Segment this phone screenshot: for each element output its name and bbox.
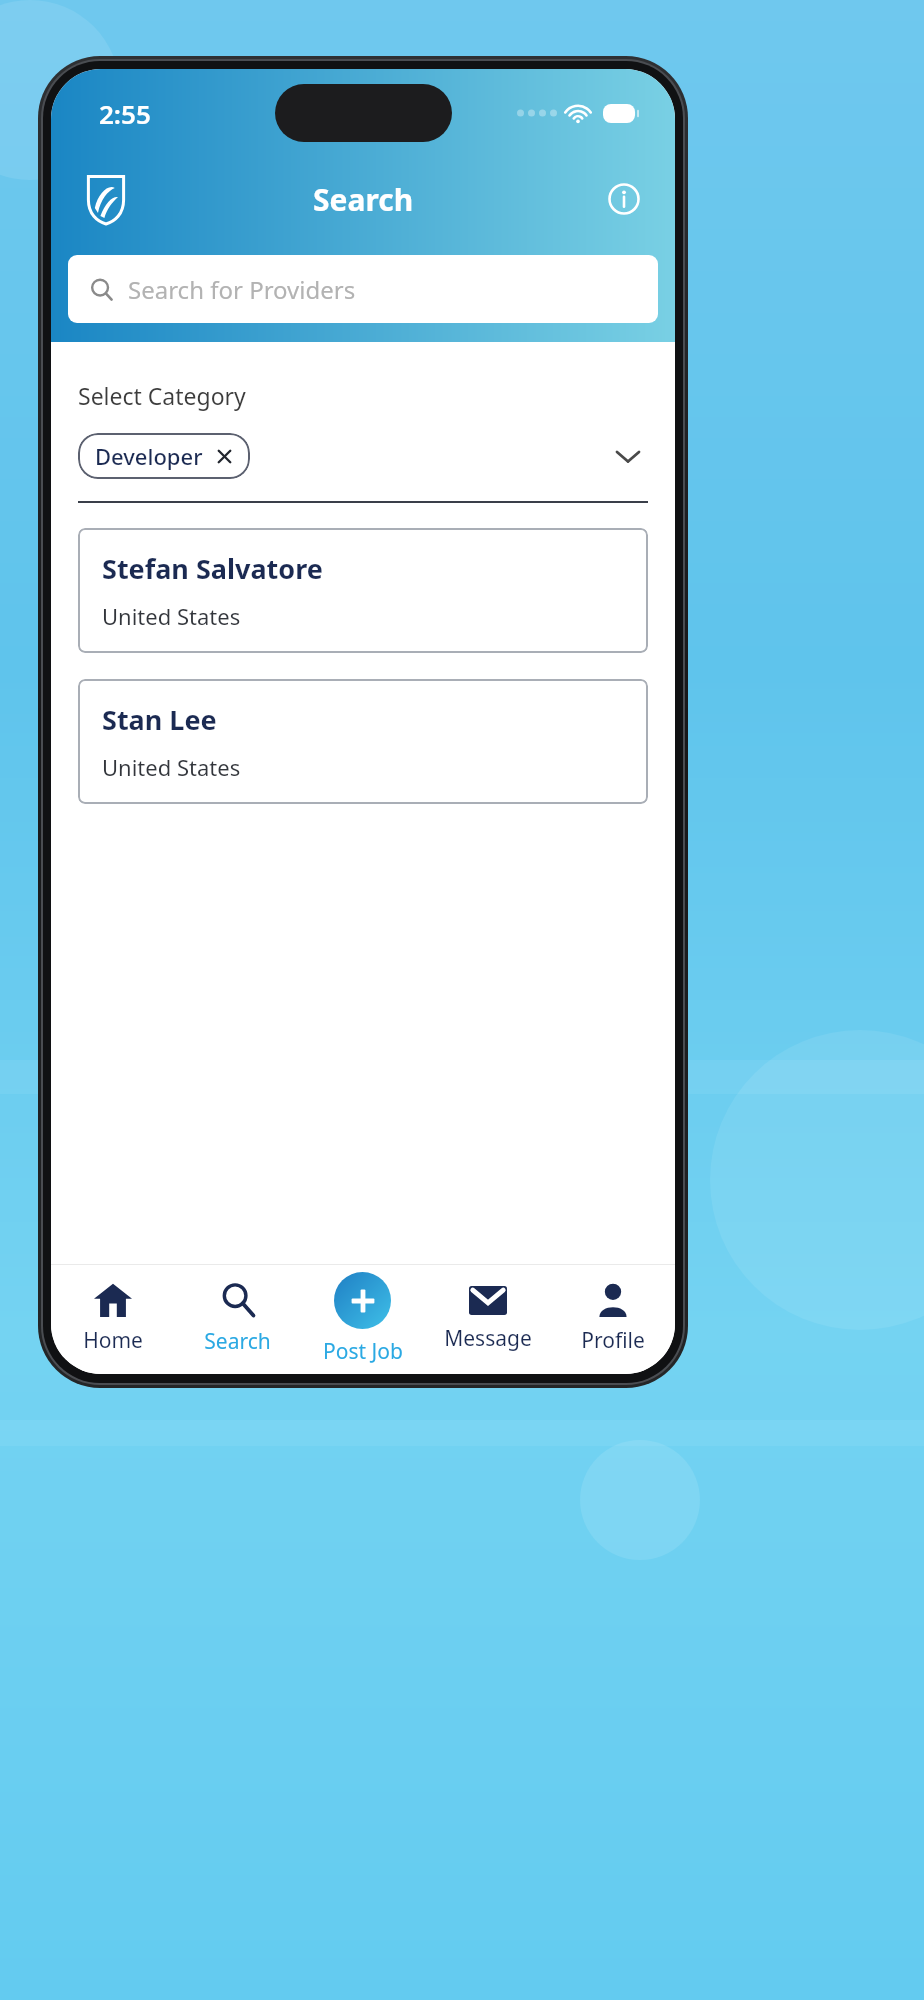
staticText: Stan Lee	[102, 701, 217, 738]
staticText: 2:55	[99, 96, 151, 131]
staticText: Search	[204, 1327, 271, 1356]
staticText: Home	[83, 1326, 143, 1355]
button[interactable]: Message	[425, 1264, 550, 1374]
staticText: Search	[313, 179, 414, 220]
button[interactable]: Developer	[78, 433, 250, 479]
staticText: United States	[102, 752, 241, 782]
button[interactable]: Search for Providers	[68, 255, 658, 323]
button[interactable]: Information	[601, 176, 647, 222]
button[interactable]: Profile	[550, 1264, 675, 1374]
button[interactable]: Post Job	[300, 1264, 425, 1374]
staticText: Message	[444, 1324, 532, 1353]
staticText: Post Job	[323, 1337, 403, 1366]
staticText: Profile	[581, 1326, 645, 1355]
staticText: Select Category	[78, 380, 246, 411]
button[interactable]: Expand categories	[608, 436, 648, 476]
button[interactable]: Home	[51, 1264, 175, 1374]
staticText: Developer	[95, 441, 203, 471]
button[interactable]: Stan Lee	[78, 679, 648, 804]
staticText: United States	[102, 601, 241, 631]
staticText: Stefan Salvatore	[102, 550, 323, 587]
button[interactable]: App logo	[79, 172, 133, 226]
staticText: Search for Providers	[128, 273, 356, 306]
button[interactable]: Stefan Salvatore	[78, 528, 648, 653]
button[interactable]: Search	[175, 1264, 300, 1374]
